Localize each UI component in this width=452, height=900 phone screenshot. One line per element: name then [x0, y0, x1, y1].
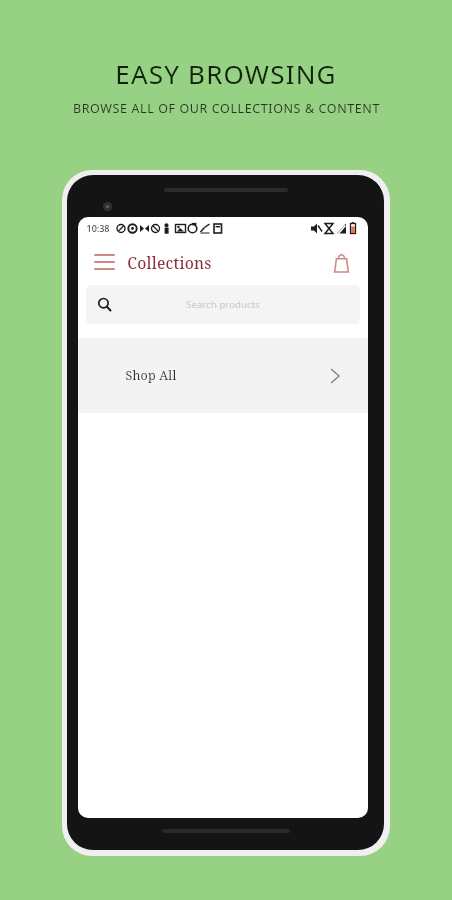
- button[interactable]: Search products: [86, 285, 360, 324]
- staticText: Shop All: [125, 367, 177, 384]
- staticText: BROWSE ALL OF OUR COLLECTIONS & CONTENT: [73, 100, 380, 117]
- staticText: Search products: [186, 298, 260, 311]
- button[interactable]: Shopping bag: [324, 245, 358, 279]
- staticText: EASY BROWSING: [115, 56, 337, 91]
- button[interactable]: Shop All: [78, 338, 368, 413]
- staticText: Collections: [127, 252, 212, 273]
- staticText: 10:38: [86, 222, 110, 234]
- button[interactable]: Open navigation menu: [87, 245, 121, 279]
